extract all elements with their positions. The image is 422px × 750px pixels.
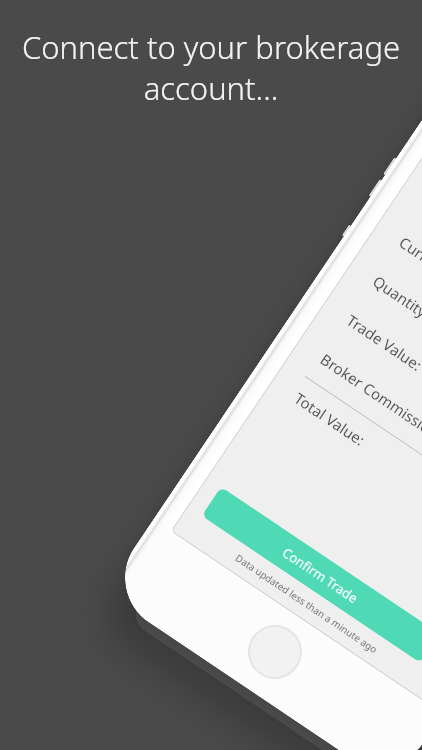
staticText: Currency: xyxy=(396,232,422,286)
button[interactable]: Confirm Trade xyxy=(201,487,422,663)
staticText: Data updated less than a minute ago xyxy=(233,551,380,656)
staticText: Broker Commission: xyxy=(317,349,422,445)
staticText: Confirm Trade xyxy=(279,543,362,607)
staticText: Connect to your brokerage account... xyxy=(10,26,412,109)
staticText: Trade Value: xyxy=(343,310,422,375)
staticText: Quantity: xyxy=(369,271,422,324)
button[interactable]: Home xyxy=(237,614,312,689)
staticText: Total Value: xyxy=(291,388,369,450)
